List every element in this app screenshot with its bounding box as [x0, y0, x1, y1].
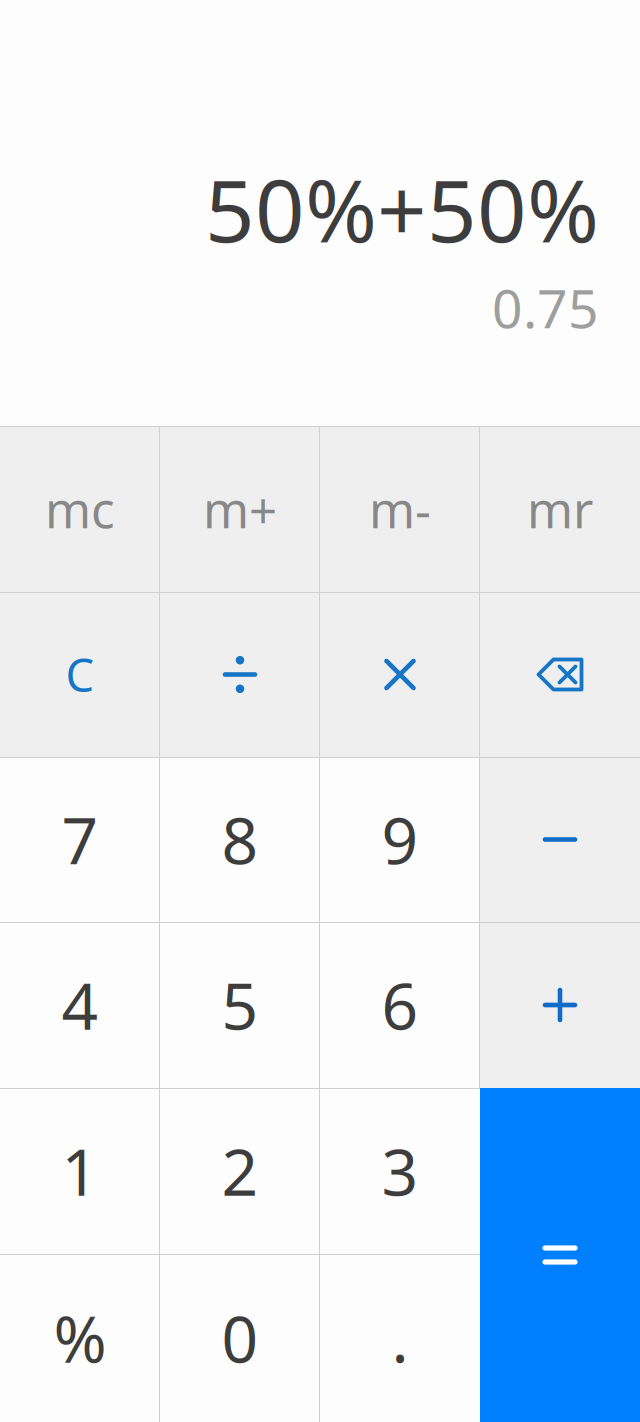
staticText: . — [391, 1295, 408, 1380]
button[interactable]: 3 — [320, 1088, 480, 1254]
button[interactable]: 0 — [160, 1254, 320, 1422]
button[interactable]: . — [320, 1254, 480, 1422]
button[interactable]: mr — [480, 426, 640, 592]
button[interactable]: Equals — [480, 1088, 640, 1422]
button[interactable]: 6 — [320, 922, 480, 1088]
staticText: 7 — [61, 797, 98, 882]
button[interactable]: 8 — [160, 757, 320, 922]
staticText: 5 — [221, 962, 258, 1047]
button[interactable]: mc — [0, 426, 160, 592]
staticText: 0 — [221, 1295, 258, 1380]
staticText: C — [65, 644, 94, 705]
button[interactable]: m+ — [160, 426, 320, 592]
staticText: 0.75 — [492, 272, 599, 343]
button[interactable]: % — [0, 1254, 160, 1422]
button[interactable]: Minus — [480, 757, 640, 922]
button[interactable]: 1 — [0, 1088, 160, 1254]
button[interactable]: Plus — [480, 922, 640, 1088]
staticText: 1 — [61, 1128, 98, 1213]
button[interactable]: m- — [320, 426, 480, 592]
staticText: m- — [369, 476, 431, 542]
staticText: % — [53, 1295, 106, 1380]
staticText: 50%+50% — [205, 151, 599, 266]
button[interactable]: Delete — [480, 592, 640, 757]
button[interactable]: 4 — [0, 922, 160, 1088]
staticText: 6 — [381, 962, 418, 1047]
staticText: 9 — [381, 797, 418, 882]
staticText: 3 — [381, 1128, 418, 1213]
button[interactable]: C — [0, 592, 160, 757]
staticText: mc — [45, 476, 115, 542]
staticText: mr — [527, 476, 593, 542]
staticText: 8 — [221, 797, 258, 882]
button[interactable]: 7 — [0, 757, 160, 922]
button[interactable]: 9 — [320, 757, 480, 922]
staticText: 2 — [221, 1128, 258, 1213]
button[interactable]: 2 — [160, 1088, 320, 1254]
button[interactable]: Multiply — [320, 592, 480, 757]
staticText: m+ — [203, 476, 277, 542]
staticText: 4 — [61, 962, 98, 1047]
button[interactable]: Divide — [160, 592, 320, 757]
button[interactable]: 5 — [160, 922, 320, 1088]
